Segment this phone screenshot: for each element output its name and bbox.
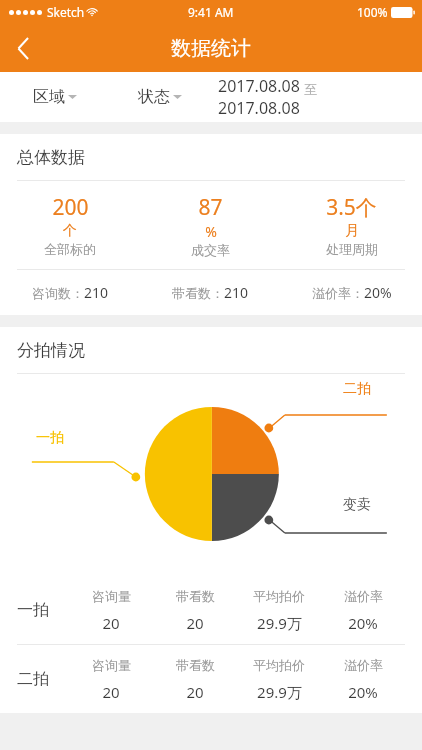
staticText: % bbox=[205, 222, 217, 241]
staticText: 20% bbox=[348, 613, 378, 633]
staticText: 二拍 bbox=[343, 380, 371, 398]
staticText: 平均拍价 bbox=[253, 657, 305, 673]
staticText: 带看数 bbox=[176, 657, 215, 673]
staticText: 成交率 bbox=[191, 242, 230, 258]
staticText: 溢价率 bbox=[344, 657, 383, 673]
staticText: 数据统计 bbox=[171, 36, 251, 61]
staticText: 29.9万 bbox=[257, 682, 302, 702]
staticText: 带看数 bbox=[176, 588, 215, 604]
staticText: Sketch bbox=[47, 4, 85, 20]
staticText: 月 bbox=[345, 222, 359, 240]
staticText: 咨询量 bbox=[92, 588, 131, 604]
staticText: 分拍情况 bbox=[17, 340, 85, 361]
button[interactable]: 区域 bbox=[0, 72, 110, 122]
button[interactable]: 一拍 bbox=[0, 576, 422, 644]
staticText: 3.5个 bbox=[326, 193, 377, 222]
staticText: 状态 bbox=[138, 87, 170, 107]
staticText: 20 bbox=[186, 613, 204, 633]
staticText: 87 bbox=[198, 193, 223, 222]
staticText: 2017.08.08 bbox=[218, 97, 300, 119]
staticText: 区域 bbox=[33, 87, 65, 107]
staticText: 处理周期 bbox=[326, 241, 378, 257]
staticText: 咨询数： bbox=[32, 285, 84, 301]
button[interactable]: 状态 bbox=[110, 72, 210, 122]
staticText: 二拍 bbox=[17, 669, 49, 689]
staticText: 个 bbox=[63, 222, 77, 240]
staticText: 20 bbox=[102, 682, 120, 702]
staticText: 210 bbox=[84, 283, 109, 302]
staticText: 20% bbox=[364, 283, 392, 302]
staticText: 溢价率 bbox=[344, 588, 383, 604]
staticText: 变卖 bbox=[343, 496, 371, 514]
staticText: 20% bbox=[348, 682, 378, 702]
staticText: 200 bbox=[52, 193, 89, 222]
staticText: 29.9万 bbox=[257, 613, 302, 633]
staticText: 20 bbox=[186, 682, 204, 702]
staticText: 210 bbox=[224, 283, 249, 302]
button[interactable]: 2017.08.08 bbox=[210, 72, 422, 122]
staticText: 带看数： bbox=[172, 285, 224, 301]
staticText: 至 bbox=[304, 81, 317, 97]
staticText: 一拍 bbox=[36, 429, 64, 447]
staticText: 20 bbox=[102, 613, 120, 633]
button[interactable]: 二拍 bbox=[0, 645, 422, 713]
staticText: 总体数据 bbox=[17, 147, 85, 168]
staticText: 溢价率： bbox=[312, 285, 364, 301]
staticText: 平均拍价 bbox=[253, 588, 305, 604]
staticText: 2017.08.08 bbox=[218, 75, 300, 97]
staticText: 一拍 bbox=[17, 600, 49, 620]
staticText: 100% bbox=[357, 4, 388, 20]
staticText: 9:41 AM bbox=[188, 4, 234, 20]
staticText: 咨询量 bbox=[92, 657, 131, 673]
button[interactable]: Back bbox=[0, 24, 46, 72]
staticText: 全部标的 bbox=[44, 241, 96, 257]
